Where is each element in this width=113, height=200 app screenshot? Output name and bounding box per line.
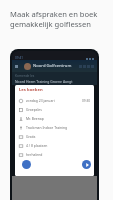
button[interactable]: Trackman Indoor Training bbox=[19, 123, 91, 132]
button[interactable]: zondag 23 januari bbox=[19, 96, 91, 105]
staticText: Maak afspraken en boek gemakkelijk golfl… bbox=[10, 9, 98, 29]
staticText: 09:30 bbox=[82, 99, 91, 103]
staticText: Noord Golfcentrum bbox=[33, 63, 72, 69]
staticText: zondag 23 januari bbox=[26, 98, 55, 103]
button[interactable]: herhalend bbox=[19, 150, 91, 159]
button[interactable]: Volgende bbox=[82, 160, 91, 169]
button[interactable]: Groepsles bbox=[19, 105, 91, 114]
button[interactable]: Terug bbox=[22, 160, 31, 169]
staticText: 09:41 bbox=[15, 56, 24, 60]
staticText: Gratis bbox=[26, 134, 36, 139]
button[interactable]: Gratis bbox=[19, 132, 91, 141]
staticText: Mr. Beenap bbox=[26, 116, 44, 121]
staticText: Groepsles bbox=[26, 107, 42, 112]
staticText: herhalend bbox=[26, 152, 43, 157]
staticText: Noord Heem Training Groene Aangt bbox=[15, 79, 73, 84]
staticText: Les boeken bbox=[19, 87, 43, 93]
button[interactable]: Mr. Beenap bbox=[19, 114, 91, 123]
staticText: Trackman Indoor Training bbox=[26, 125, 68, 130]
staticText: 4 / 8 plaatsen bbox=[26, 143, 48, 148]
button[interactable]: 4 / 8 plaatsen bbox=[19, 141, 91, 150]
staticText: Komende les bbox=[15, 74, 35, 78]
